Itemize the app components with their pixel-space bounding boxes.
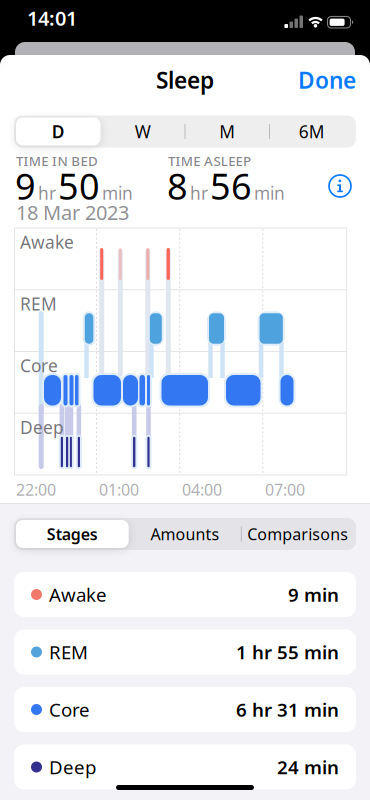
button[interactable]: Awake — [14, 572, 356, 617]
button[interactable]: REM — [14, 629, 356, 674]
staticText: 1 hr 55 min — [236, 640, 339, 664]
staticText: TIME IN BED — [16, 152, 98, 170]
staticText: 6 hr 31 min — [236, 697, 339, 722]
staticText: 50 — [58, 162, 100, 210]
staticText: 07:00 — [265, 479, 305, 500]
staticText: 56 — [210, 162, 252, 210]
button[interactable]: Deep — [14, 744, 356, 789]
staticText: Awake — [49, 582, 107, 607]
staticText: Deep — [20, 416, 64, 439]
button[interactable]: Stages — [16, 520, 129, 548]
staticText: REM — [20, 292, 57, 315]
staticText: min — [102, 182, 133, 205]
staticText: M — [219, 120, 235, 143]
staticText: hr — [38, 182, 56, 205]
staticText: Comparisons — [247, 523, 348, 545]
button[interactable]: Done — [296, 66, 356, 94]
staticText: REM — [49, 640, 88, 664]
button[interactable]: Amounts — [129, 518, 241, 550]
button[interactable]: D — [16, 117, 100, 145]
staticText: Sleep — [156, 65, 214, 95]
button[interactable]: 6M — [269, 115, 354, 147]
staticText: W — [135, 120, 151, 143]
staticText: 01:00 — [99, 479, 139, 500]
staticText: 04:00 — [182, 479, 222, 500]
staticText: Deep — [49, 755, 96, 779]
staticText: Core — [20, 354, 58, 377]
staticText: min — [254, 182, 285, 205]
staticText: 9 — [15, 162, 36, 210]
staticText: 24 min — [277, 755, 339, 779]
staticText: Stages — [47, 523, 98, 545]
staticText: 9 min — [288, 582, 339, 607]
button[interactable]: W — [100, 115, 185, 147]
staticText: 22:00 — [16, 479, 56, 500]
staticText: D — [52, 120, 65, 143]
button[interactable]: Core — [14, 687, 356, 732]
staticText: Amounts — [150, 523, 219, 545]
staticText: 18 Mar 2023 — [16, 199, 129, 226]
staticText: Core — [49, 697, 90, 722]
staticText: Done — [298, 65, 356, 95]
staticText: 14:01 — [27, 5, 77, 31]
staticText: 8 — [167, 162, 188, 210]
button[interactable]: More information — [329, 175, 351, 197]
staticText: TIME ASLEEP — [168, 152, 251, 170]
staticText: hr — [190, 182, 208, 205]
staticText: 6M — [299, 120, 325, 143]
button[interactable]: Comparisons — [241, 518, 354, 550]
staticText: Awake — [20, 230, 74, 253]
button[interactable]: M — [185, 115, 269, 147]
